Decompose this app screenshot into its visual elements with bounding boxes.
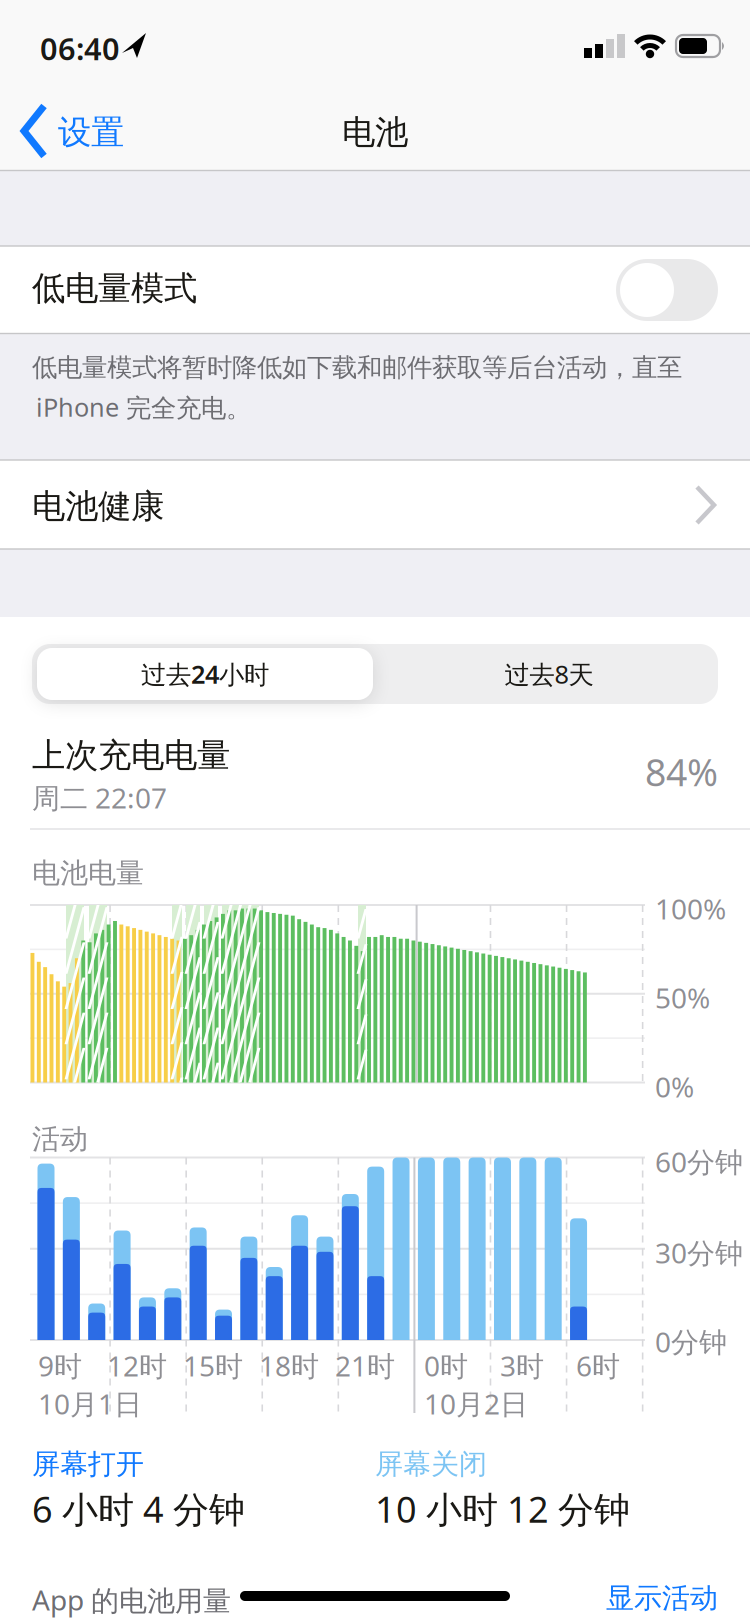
staticText: 50% (655, 979, 710, 1016)
staticText: 15时 (183, 1347, 243, 1384)
button[interactable]: 过去8天 (384, 648, 714, 700)
staticText: iPhone 完全充电。 (36, 390, 251, 424)
staticText: 10月2日 (424, 1385, 528, 1422)
staticText: 84% (645, 747, 718, 797)
staticText: 电池 (342, 112, 408, 153)
staticText: 屏幕打开 (32, 1447, 144, 1481)
staticText: 过去24小时 (141, 657, 269, 691)
staticText: 过去8天 (504, 657, 593, 691)
staticText: 低电量模式 (32, 268, 197, 309)
staticText: 100% (655, 890, 726, 927)
button[interactable]: 电池健康 (0, 460, 750, 549)
staticText: 6时 (576, 1347, 620, 1384)
button[interactable]: 设置 (16, 98, 156, 164)
button[interactable]: 低电量模式 (0, 246, 750, 334)
button[interactable]: 显示活动 (32, 1581, 718, 1615)
staticText: 显示活动 (606, 1581, 718, 1615)
staticText: 9时 (38, 1347, 82, 1384)
staticText: 10月1日 (38, 1385, 142, 1422)
staticText: App 的电池用量 (32, 1581, 231, 1618)
staticText: 3时 (500, 1347, 544, 1384)
staticText: 0时 (424, 1347, 468, 1384)
staticText: 屏幕关闭 (375, 1447, 487, 1481)
staticText: 0% (655, 1068, 694, 1105)
staticText: 18时 (259, 1347, 319, 1384)
button[interactable]: 过去24小时 (37, 648, 373, 700)
staticText: 活动 (32, 1122, 88, 1156)
staticText: 21时 (335, 1347, 395, 1384)
staticText: 30分钟 (655, 1234, 743, 1271)
staticText: 10 小时 12 分钟 (375, 1485, 630, 1533)
staticText: 上次充电电量 (32, 735, 230, 776)
staticText: 12时 (107, 1347, 167, 1384)
staticText: 60分钟 (655, 1143, 743, 1180)
staticText: 6 小时 4 分钟 (32, 1485, 245, 1533)
staticText: 周二 22:07 (32, 779, 167, 816)
staticText: 设置 (58, 112, 124, 153)
staticText: 电池健康 (32, 486, 164, 527)
staticText: 低电量模式将暂时降低如下载和邮件获取等后台活动，直至 (32, 352, 682, 383)
staticText: 0分钟 (655, 1323, 727, 1360)
staticText: 06:40 (40, 28, 120, 69)
staticText: 电池电量 (32, 856, 144, 890)
